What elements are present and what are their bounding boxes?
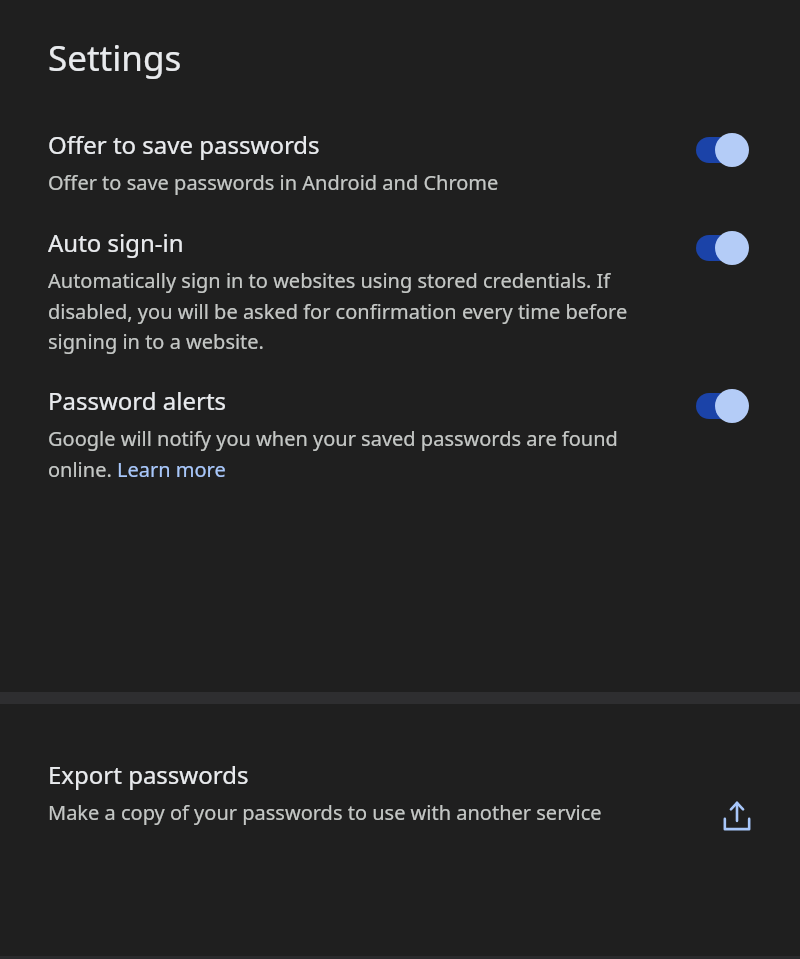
staticText: Auto sign-in <box>48 226 184 259</box>
button[interactable]: Offer to save passwords toggle <box>696 130 760 170</box>
button[interactable]: Password alerts toggle <box>696 386 760 426</box>
staticText: Make a copy of your passwords to use wit… <box>48 799 602 826</box>
staticText: Automatically sign in to websites using … <box>48 267 680 354</box>
staticText: Offer to save passwords <box>48 128 320 161</box>
staticText: Google will notify you when your saved p… <box>48 425 680 482</box>
button[interactable]: Offer to save passwords <box>0 128 800 196</box>
button[interactable]: Export passwords <box>0 704 800 840</box>
button[interactable]: Auto sign-in toggle <box>696 228 760 268</box>
button[interactable]: Export passwords <box>714 794 760 840</box>
staticText: Offer to save passwords in Android and C… <box>48 169 499 196</box>
staticText: Export passwords <box>48 758 249 791</box>
staticText: Settings <box>48 34 182 82</box>
button[interactable]: Password alerts <box>0 384 800 482</box>
staticText: Password alerts <box>48 384 227 417</box>
button[interactable]: Auto sign-in <box>0 226 800 354</box>
